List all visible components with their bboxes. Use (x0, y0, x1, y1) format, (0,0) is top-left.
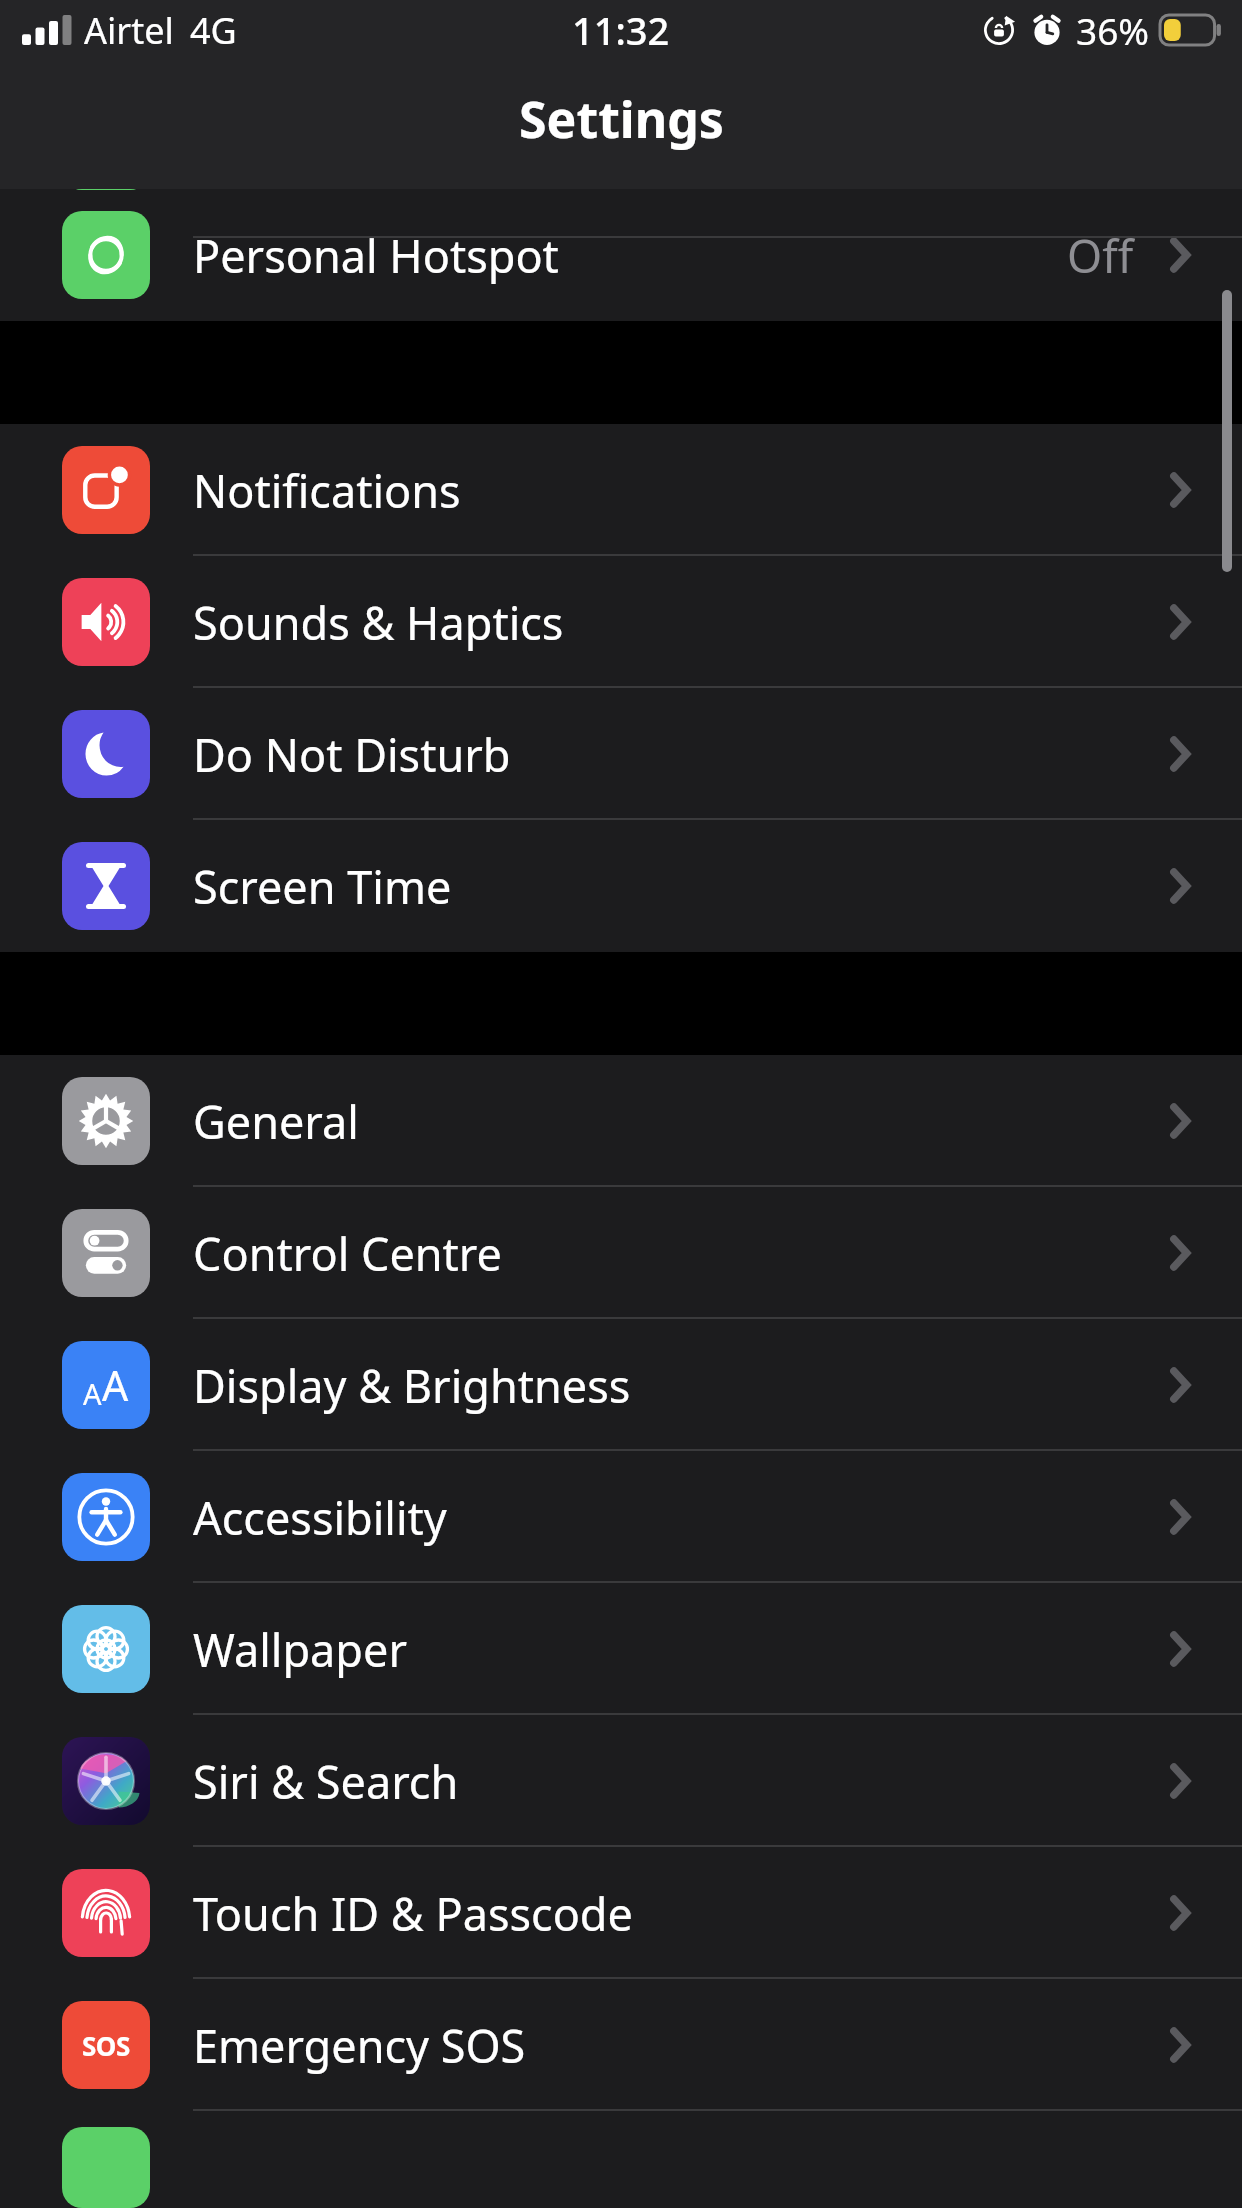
button[interactable]: Notifications (0, 424, 1242, 556)
staticText: 36% (1076, 5, 1150, 55)
staticText: Wallpaper (193, 1619, 407, 1680)
staticText: Display & Brightness (193, 1355, 631, 1416)
staticText: Emergency SOS (193, 2015, 526, 2076)
staticText: General (193, 1091, 359, 1152)
staticText: A (83, 1374, 102, 1413)
button[interactable]: A (0, 1319, 1242, 1451)
button[interactable]: Do Not Disturb (0, 688, 1242, 820)
button[interactable]: General (0, 1055, 1242, 1187)
staticText: Off (1067, 225, 1134, 286)
button[interactable]: Accessibility (0, 1451, 1242, 1583)
staticText: 4G (190, 6, 237, 55)
button[interactable]: Screen Time (0, 820, 1242, 952)
staticText: Screen Time (193, 856, 452, 917)
button[interactable]: Touch ID & Passcode (0, 1847, 1242, 1979)
button[interactable]: Sounds & Haptics (0, 556, 1242, 688)
staticText: A (102, 1357, 129, 1413)
staticText: Sounds & Haptics (193, 592, 564, 653)
staticText: Settings (519, 85, 724, 153)
button[interactable]: Battery (0, 2111, 1242, 2208)
other: Battery (62, 2127, 150, 2208)
button[interactable]: Personal Hotspot (0, 189, 1242, 321)
staticText: Control Centre (193, 1223, 502, 1284)
staticText: Accessibility (193, 1487, 447, 1548)
staticText: Notifications (193, 460, 461, 521)
button[interactable]: Siri & Search (0, 1715, 1242, 1847)
button[interactable]: Control Centre (0, 1187, 1242, 1319)
button[interactable]: SOS (0, 1979, 1242, 2111)
staticText: Touch ID & Passcode (193, 1883, 633, 1944)
staticText: Siri & Search (193, 1751, 459, 1812)
staticText: Personal Hotspot (193, 225, 559, 286)
staticText: SOS (82, 2028, 130, 2063)
staticText: 11:32 (572, 4, 670, 56)
button[interactable]: Wallpaper (0, 1583, 1242, 1715)
staticText: Do Not Disturb (193, 724, 511, 785)
staticText: Airtel (84, 6, 174, 55)
